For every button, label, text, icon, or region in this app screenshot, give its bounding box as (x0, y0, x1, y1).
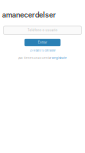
staticText: ¿Olvidaste tu contraseña? (29, 49, 55, 52)
staticText: ¿No tienes una cuenta? (18, 56, 51, 60)
staticText: Regístrate (52, 56, 67, 60)
staticText: amanecerdelser (2, 11, 56, 19)
button[interactable]: ¿Olvidaste tu contraseña? (29, 49, 55, 52)
button[interactable]: Entrar (24, 39, 60, 46)
button[interactable]: ¿No tienes una cuenta? (18, 56, 67, 60)
staticText: Entrar (38, 41, 47, 44)
staticText: Teléfono o usuario (27, 28, 57, 32)
